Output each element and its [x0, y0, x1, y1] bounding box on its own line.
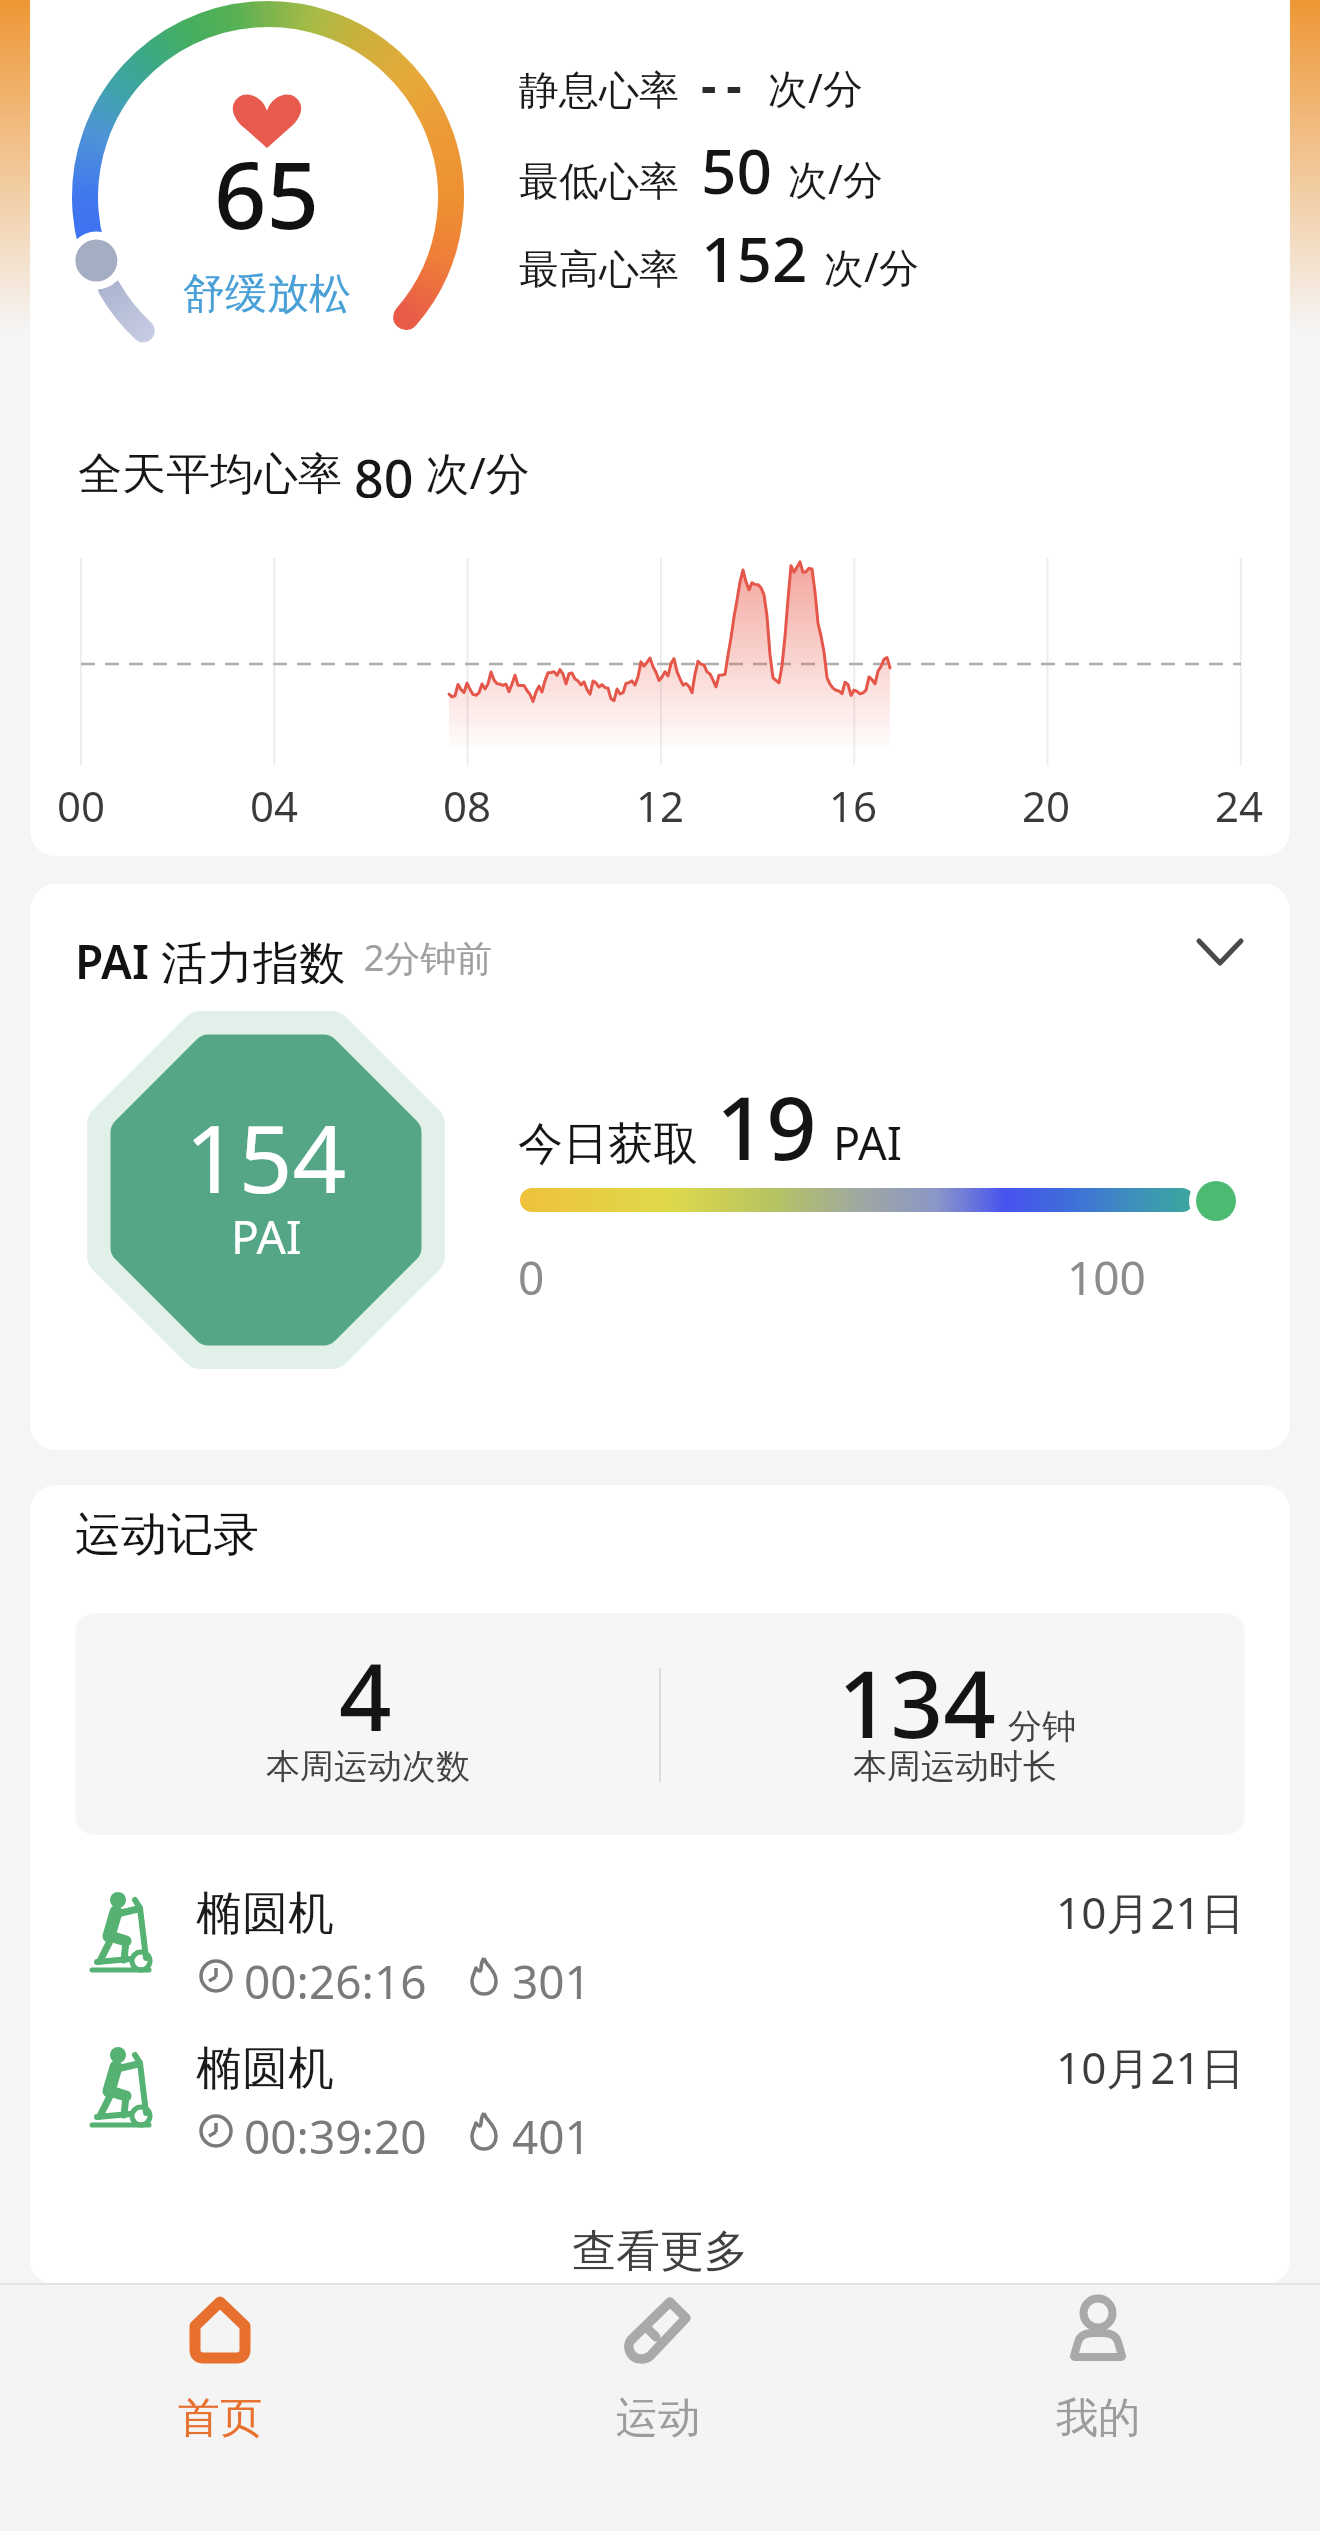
staticText: 20: [1022, 777, 1071, 834]
staticText: 本周运动时长: [853, 1745, 1057, 1788]
staticText: 154: [185, 1093, 347, 1221]
button[interactable]: 查看更多: [530, 2220, 790, 2282]
staticText: 12: [636, 777, 685, 834]
staticText: 4: [339, 1633, 392, 1758]
staticText: 10月21日: [1056, 1882, 1245, 1938]
staticText: PAI: [231, 1205, 302, 1268]
staticText: 运动: [616, 2392, 700, 2445]
staticText: 10月21日: [1056, 2037, 1245, 2093]
staticText: 24: [1215, 777, 1264, 834]
staticText: 最低心率: [519, 156, 679, 206]
staticText: 04: [250, 777, 299, 834]
staticText: 今日获取: [518, 1116, 698, 1173]
staticText: 50: [701, 128, 772, 212]
button[interactable]: 首页: [150, 2294, 290, 2464]
button[interactable]: [75, 1874, 1245, 2014]
button[interactable]: [75, 2029, 1245, 2169]
staticText: 00:39:20: [244, 2105, 427, 2168]
staticText: 次/分: [414, 442, 530, 498]
staticText: 80: [354, 442, 414, 498]
staticText: 本周运动次数: [266, 1745, 470, 1788]
staticText: 全天平均心率: [78, 442, 354, 498]
staticText: 134: [838, 1640, 996, 1765]
staticText: --: [701, 52, 752, 117]
staticText: 次/分: [788, 151, 883, 206]
staticText: 2分钟前: [345, 933, 493, 982]
staticText: PAI: [833, 1112, 902, 1173]
staticText: 301: [512, 1950, 591, 2013]
staticText: 16: [829, 777, 878, 834]
staticText: 次/分: [824, 239, 919, 294]
staticText: 00: [57, 777, 106, 834]
staticText: 运动记录: [75, 1506, 259, 1564]
staticText: 100: [1067, 1246, 1146, 1309]
staticText: 最高心率: [519, 244, 679, 294]
staticText: 0: [518, 1246, 545, 1309]
staticText: 查看更多: [572, 2224, 748, 2279]
staticText: PAI 活力指数: [75, 930, 345, 984]
staticText: 静息心率: [519, 65, 679, 115]
staticText: 分钟: [1008, 1705, 1076, 1748]
staticText: 401: [512, 2105, 591, 2168]
staticText: 65: [214, 131, 320, 256]
staticText: 00:26:16: [244, 1950, 427, 2013]
staticText: 152: [701, 216, 808, 300]
staticText: 舒缓放松: [183, 268, 351, 321]
staticText: 次/分: [768, 60, 863, 115]
button[interactable]: 我的: [1028, 2294, 1168, 2464]
staticText: 19: [716, 1066, 817, 1186]
button[interactable]: [1180, 920, 1260, 984]
staticText: 椭圆机: [196, 2040, 334, 2098]
staticText: 08: [443, 777, 492, 834]
staticText: 椭圆机: [196, 1885, 334, 1943]
staticText: 我的: [1056, 2392, 1140, 2445]
staticText: 首页: [178, 2392, 262, 2445]
button[interactable]: 运动: [588, 2294, 728, 2464]
